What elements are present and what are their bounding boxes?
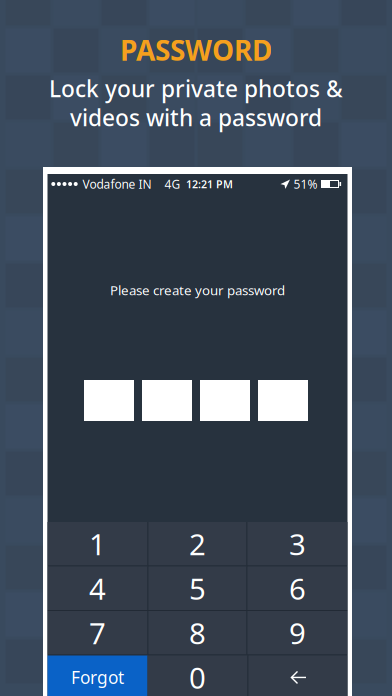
staticText: 12:21 PM	[186, 177, 233, 191]
button[interactable]: Delete	[248, 655, 347, 696]
button[interactable]: 9	[247, 611, 347, 654]
staticText: 5	[189, 569, 206, 608]
staticText: 3	[289, 524, 306, 563]
staticText: 4	[89, 569, 106, 608]
staticText: 8	[189, 613, 206, 652]
button[interactable]: 0	[147, 655, 247, 696]
button[interactable]: 6	[247, 566, 347, 610]
button[interactable]: 3	[247, 522, 347, 565]
button[interactable]: 2	[148, 522, 246, 565]
staticText: 0	[189, 658, 206, 696]
staticText: Lock your private photos &	[49, 73, 343, 103]
staticText: videos with a password	[70, 102, 322, 132]
staticText: Please create your password	[110, 281, 285, 299]
staticText: Vodafone IN	[82, 176, 151, 192]
button[interactable]: Forgot	[47, 655, 147, 696]
staticText: PASSWORD	[120, 31, 272, 69]
button[interactable]: 5	[148, 566, 246, 610]
button[interactable]: 8	[148, 611, 246, 654]
button[interactable]: 7	[47, 611, 147, 654]
staticText: 6	[289, 569, 306, 608]
staticText: 4G	[164, 176, 180, 192]
staticText: 7	[89, 613, 106, 652]
button[interactable]: 4	[47, 566, 147, 610]
staticText: 1	[89, 524, 106, 563]
staticText: 9	[289, 613, 306, 652]
button[interactable]: 1	[47, 522, 147, 565]
staticText: 51%	[293, 176, 317, 192]
staticText: 2	[189, 524, 206, 563]
staticText: Forgot	[71, 666, 124, 689]
